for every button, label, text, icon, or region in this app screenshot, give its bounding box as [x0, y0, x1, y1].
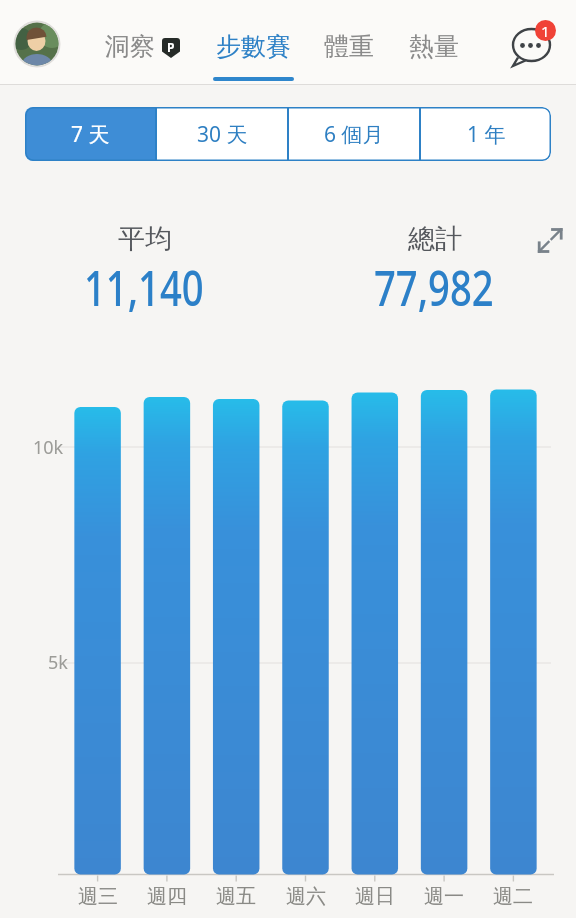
button[interactable]: 熱量 [379, 16, 489, 76]
staticText: 30 天 [197, 120, 248, 149]
staticText: 平均 [118, 222, 172, 256]
staticText: 5k [48, 650, 68, 675]
button[interactable]: 30 天 [157, 107, 287, 161]
staticText: 洞察 [105, 31, 155, 62]
staticText: 11,140 [84, 254, 204, 321]
button[interactable] [534, 224, 566, 256]
staticText: 熱量 [409, 31, 459, 62]
staticText: 週四 [147, 884, 187, 909]
staticText: 週日 [355, 884, 395, 909]
button[interactable] [14, 21, 60, 67]
button[interactable]: 1 [505, 18, 565, 78]
button[interactable]: 6 個月 [289, 107, 419, 161]
staticText: 週二 [493, 884, 533, 909]
button[interactable]: 7 天 [25, 107, 155, 161]
button[interactable]: 1 年 [421, 107, 551, 161]
staticText: 6 個月 [324, 120, 384, 149]
staticText: 週一 [424, 884, 464, 909]
button[interactable]: 體重 [294, 16, 404, 76]
staticText: 體重 [324, 31, 374, 62]
staticText: 步數賽 [216, 31, 291, 62]
staticText: 週三 [78, 884, 118, 909]
staticText: 77,982 [374, 254, 494, 321]
staticText: 10k [33, 435, 64, 460]
staticText: 週五 [216, 884, 256, 909]
staticText: 1 [541, 21, 550, 41]
staticText: 1 年 [467, 120, 506, 149]
staticText: 7 天 [71, 120, 110, 149]
staticText: 總計 [408, 222, 462, 256]
staticText: 週六 [286, 884, 326, 909]
staticText: P [167, 39, 175, 55]
button[interactable]: 步數賽 [188, 16, 318, 76]
button[interactable]: 洞察 [75, 16, 185, 76]
